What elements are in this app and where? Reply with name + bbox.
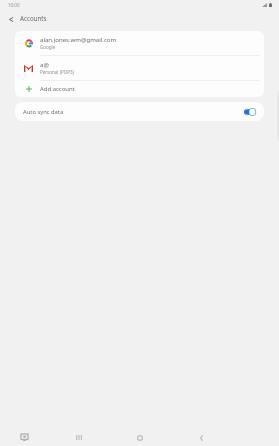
staticText: alan.jones.wm@gmail.com [40,36,117,44]
button[interactable]: Recent apps [68,429,90,446]
staticText: Accounts [20,14,47,22]
staticText: Add account [40,85,75,93]
button[interactable]: Back [3,12,18,26]
staticText: 10:00 [8,2,20,8]
button[interactable]: Add account [15,81,264,97]
button[interactable]: alan.jones.wm@gmail.com [15,31,264,55]
staticText: Google [40,44,56,50]
staticText: Auto sync data [23,108,64,116]
button[interactable]: Home [129,429,151,446]
button[interactable]: a@ [15,56,264,80]
button[interactable]: Auto sync data [15,102,264,121]
button[interactable]: Back [190,429,212,446]
staticText: Personal (POP3) [40,69,74,75]
staticText: a@ [40,61,49,69]
button[interactable]: Screenshot [13,429,35,446]
